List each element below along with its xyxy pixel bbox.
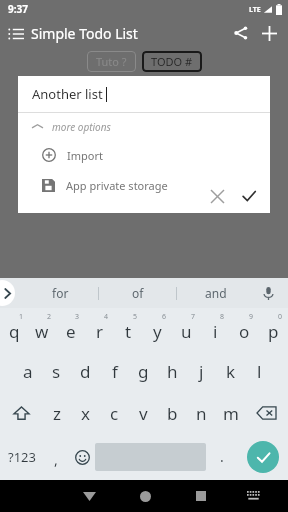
button[interactable]: of: [99, 278, 176, 308]
staticText: u: [181, 320, 192, 343]
staticText: .: [220, 447, 224, 466]
staticText: k: [226, 360, 236, 383]
button[interactable]: Voice input: [256, 281, 280, 305]
button[interactable]: l: [245, 350, 274, 392]
button[interactable]: Enter: [247, 441, 279, 473]
staticText: c: [110, 402, 119, 425]
staticText: 2: [47, 312, 52, 322]
button[interactable]: and: [177, 278, 254, 308]
button[interactable]: App private storage: [18, 170, 270, 200]
button[interactable]: 5: [114, 308, 143, 350]
staticText: a: [23, 360, 33, 383]
staticText: d: [80, 360, 91, 383]
staticText: more options: [52, 120, 111, 134]
staticText: Import: [67, 148, 103, 163]
staticText: y: [153, 320, 162, 343]
button[interactable]: a: [14, 350, 42, 392]
staticText: 4: [104, 312, 109, 322]
button[interactable]: Recents: [173, 480, 229, 512]
button[interactable]: Confirm: [236, 183, 262, 209]
button[interactable]: c: [100, 392, 129, 434]
staticText: n: [196, 402, 207, 425]
button[interactable]: ,: [43, 434, 69, 480]
button[interactable]: 2: [28, 308, 56, 350]
button[interactable]: Emoji: [69, 434, 95, 480]
button[interactable]: k: [216, 350, 245, 392]
button[interactable]: d: [71, 350, 100, 392]
button[interactable]: 9: [230, 308, 259, 350]
staticText: Simple Todo List: [31, 24, 138, 43]
button[interactable]: 8: [201, 308, 230, 350]
staticText: 3: [75, 312, 80, 322]
staticText: r: [96, 320, 104, 343]
button[interactable]: Lists: [8, 24, 138, 43]
other: Lists: [8, 26, 24, 42]
staticText: 9: [249, 312, 254, 322]
staticText: TODO #: [151, 54, 193, 69]
staticText: l: [257, 360, 262, 383]
staticText: z: [53, 402, 61, 425]
button[interactable]: Home: [117, 480, 173, 512]
button[interactable]: Expand toolbar: [0, 280, 15, 306]
button[interactable]: 3: [56, 308, 85, 350]
button[interactable]: g: [129, 350, 158, 392]
staticText: f: [112, 360, 118, 383]
button[interactable]: ?123: [0, 434, 43, 480]
staticText: q: [9, 320, 20, 343]
staticText: s: [52, 360, 61, 383]
button[interactable]: n: [187, 392, 216, 434]
button[interactable]: for: [22, 278, 98, 308]
staticText: Another list: [32, 85, 103, 103]
button[interactable]: h: [158, 350, 187, 392]
button[interactable]: Cancel: [204, 183, 230, 209]
button[interactable]: Back: [61, 480, 117, 512]
staticText: t: [125, 320, 132, 343]
button[interactable]: Import: [18, 140, 270, 170]
staticText: 5: [133, 312, 138, 322]
staticText: x: [81, 402, 90, 425]
staticText: h: [167, 360, 178, 383]
button[interactable]: m: [216, 392, 245, 434]
staticText: of: [132, 285, 144, 301]
staticText: LTE: [249, 5, 261, 15]
staticText: App private storage: [66, 178, 168, 193]
button[interactable]: z: [42, 392, 71, 434]
staticText: ,: [54, 450, 58, 469]
staticText: for: [52, 285, 69, 301]
staticText: j: [199, 360, 204, 383]
staticText: v: [139, 402, 148, 425]
staticText: m: [223, 402, 239, 425]
button[interactable]: more options: [18, 113, 270, 140]
button[interactable]: Backspace: [245, 392, 288, 434]
button[interactable]: 0: [259, 308, 288, 350]
staticText: Tuto ?: [96, 54, 127, 69]
staticText: and: [205, 285, 227, 301]
staticText: b: [167, 402, 178, 425]
button[interactable]: x: [71, 392, 100, 434]
staticText: 1: [19, 312, 24, 322]
button[interactable]: j: [187, 350, 216, 392]
button[interactable]: b: [158, 392, 187, 434]
staticText: 9:37: [8, 2, 28, 16]
button[interactable]: .: [206, 434, 238, 480]
button[interactable]: Share: [230, 22, 252, 44]
staticText: 7: [191, 312, 196, 322]
staticText: w: [35, 320, 49, 343]
button[interactable]: Tuto ?: [87, 51, 136, 72]
staticText: 0: [278, 312, 283, 322]
button[interactable]: 7: [172, 308, 201, 350]
button[interactable]: 6: [143, 308, 172, 350]
button[interactable]: Keyboard switcher: [229, 480, 277, 512]
button[interactable]: Shift: [0, 392, 42, 434]
staticText: ?123: [8, 448, 36, 466]
button[interactable]: f: [100, 350, 129, 392]
button[interactable]: Add: [258, 22, 280, 44]
button[interactable]: v: [129, 392, 158, 434]
button[interactable]: TODO #: [142, 51, 202, 72]
button[interactable]: s: [42, 350, 71, 392]
staticText: 8: [220, 312, 225, 322]
staticText: e: [66, 320, 76, 343]
button[interactable]: 1: [0, 308, 28, 350]
button[interactable]: 4: [85, 308, 114, 350]
